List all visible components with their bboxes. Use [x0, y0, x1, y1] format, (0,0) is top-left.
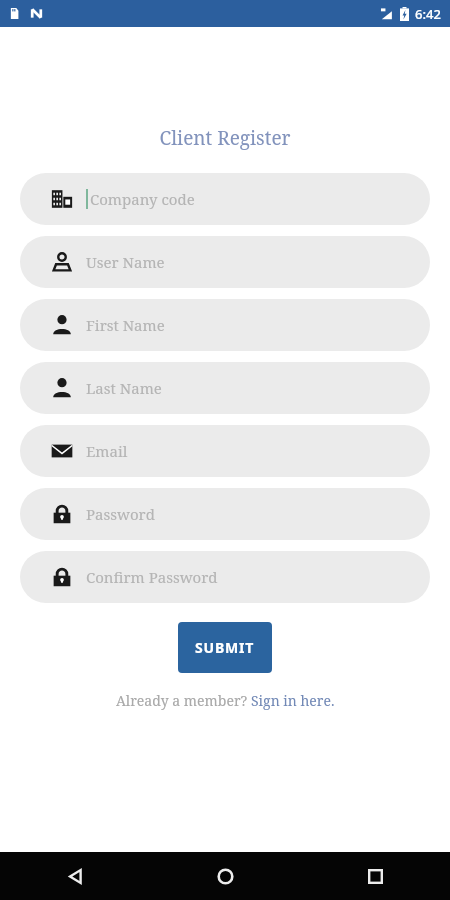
- button[interactable]: Recent apps: [300, 852, 450, 900]
- staticText: Last Name: [86, 378, 162, 398]
- staticText: Sign in here.: [251, 691, 335, 710]
- button[interactable]: Home: [150, 852, 300, 900]
- staticText: Confirm Password: [86, 567, 218, 587]
- button[interactable]: Confirm Password: [20, 551, 430, 603]
- staticText: First Name: [86, 315, 165, 335]
- staticText: Already a member?: [116, 691, 251, 710]
- button[interactable]: First Name: [20, 299, 430, 351]
- button[interactable]: Back: [0, 852, 150, 900]
- button[interactable]: Company code: [20, 173, 430, 225]
- staticText: User Name: [86, 252, 165, 272]
- staticText: Company code: [90, 189, 195, 209]
- staticText: 6:42: [415, 5, 441, 23]
- button[interactable]: Email: [20, 425, 430, 477]
- staticText: SUBMIT: [195, 638, 255, 657]
- staticText: Password: [86, 504, 155, 524]
- button[interactable]: User Name: [20, 236, 430, 288]
- button[interactable]: Last Name: [20, 362, 430, 414]
- staticText: Client Register: [0, 125, 450, 151]
- staticText: Email: [86, 441, 128, 461]
- button[interactable]: Sign in here.: [251, 691, 335, 710]
- button[interactable]: Password: [20, 488, 430, 540]
- button[interactable]: SUBMIT: [178, 622, 272, 673]
